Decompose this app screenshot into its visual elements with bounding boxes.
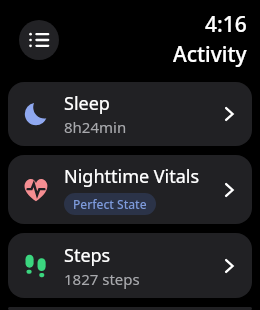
staticText: Perfect State [73, 196, 147, 212]
staticText: Sleep [64, 91, 110, 116]
staticText: Steps [64, 243, 111, 268]
other: Open Sleep [218, 103, 240, 125]
button[interactable]: Steps [8, 233, 252, 298]
staticText: Nighttime Vitals [64, 164, 200, 189]
button[interactable]: Nighttime Vitals [8, 155, 252, 224]
staticText: Activity [173, 40, 247, 69]
staticText: 4:16 [205, 10, 247, 39]
other: Open Nighttime Vitals [218, 179, 240, 201]
button[interactable]: Sleep [8, 82, 252, 146]
button[interactable]: Menu [19, 20, 59, 60]
other: Open Steps [218, 255, 240, 277]
staticText: 8h24min [64, 117, 127, 137]
staticText: 1827 steps [64, 269, 140, 289]
